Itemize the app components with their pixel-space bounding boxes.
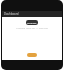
button[interactable]	[27, 53, 37, 57]
staticText: Connect	[27, 21, 37, 24]
staticText: Nothing here yet — add one	[16, 26, 48, 29]
button[interactable]: Connect	[26, 20, 38, 25]
staticText: Dashboard	[4, 12, 19, 16]
